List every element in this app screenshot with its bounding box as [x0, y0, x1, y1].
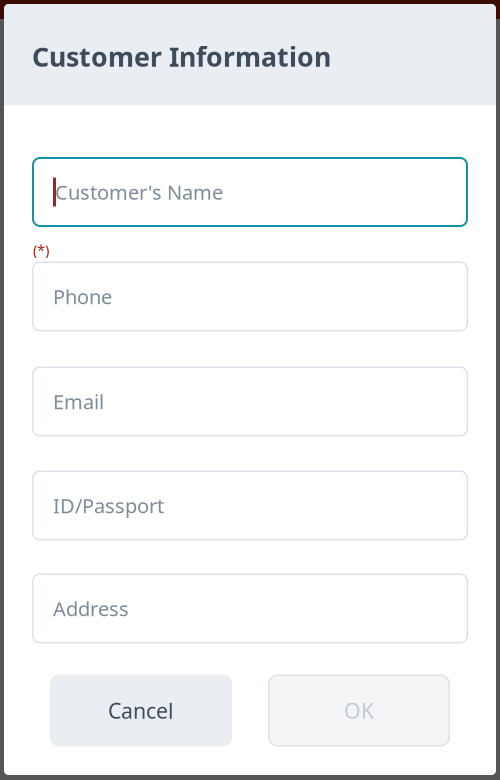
staticText: (*) [33, 240, 49, 259]
staticText: Email [53, 388, 104, 415]
staticText: Address [53, 595, 129, 622]
staticText: Phone [53, 283, 112, 310]
staticText: Customer's Name [55, 179, 223, 205]
button[interactable]: Address [32, 573, 468, 643]
button[interactable]: Email [32, 366, 468, 436]
button[interactable]: OK [268, 674, 450, 746]
button[interactable]: Customer's Name [32, 157, 468, 227]
staticText: ID/Passport [53, 492, 164, 519]
staticText: Customer Information [32, 39, 331, 74]
button[interactable]: Cancel [50, 674, 232, 746]
button[interactable]: Phone [32, 261, 468, 331]
staticText: Cancel [108, 696, 174, 725]
staticText: OK [344, 696, 374, 725]
button[interactable]: ID/Passport [32, 470, 468, 540]
